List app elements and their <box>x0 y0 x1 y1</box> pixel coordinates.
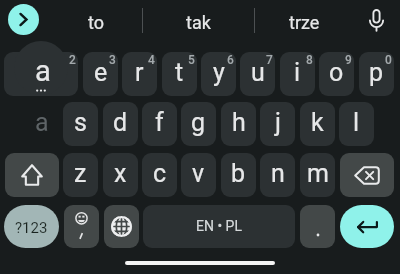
button[interactable]: u <box>240 52 275 96</box>
button[interactable]: r <box>122 52 157 96</box>
button[interactable]: n <box>260 153 295 197</box>
staticText: 8 <box>306 53 313 67</box>
staticText: l <box>353 108 360 137</box>
button[interactable]: Period <box>300 205 335 248</box>
button[interactable]: EN • PL <box>143 205 295 248</box>
button[interactable]: p <box>359 52 394 96</box>
staticText: p <box>369 58 384 87</box>
button[interactable]: a <box>24 102 59 146</box>
staticText: s <box>74 108 87 137</box>
staticText: e <box>94 58 108 87</box>
staticText: 0 <box>385 53 392 67</box>
button[interactable]: Voice input <box>360 4 393 37</box>
staticText: u <box>251 58 265 87</box>
button[interactable]: v <box>181 153 216 197</box>
staticText: y <box>213 58 225 87</box>
staticText: k <box>311 108 324 137</box>
staticText: j <box>275 108 281 137</box>
button[interactable]: i <box>280 52 315 96</box>
button[interactable]: l <box>339 102 374 146</box>
staticText: m <box>307 159 329 188</box>
staticText: r <box>135 58 144 87</box>
button[interactable]: Enter <box>340 205 394 248</box>
button[interactable]: c <box>142 153 177 197</box>
button[interactable]: trze <box>254 0 355 40</box>
staticText: h <box>232 108 246 137</box>
button[interactable]: a <box>4 52 78 96</box>
button[interactable]: x <box>103 153 138 197</box>
button[interactable]: g <box>181 102 216 146</box>
button[interactable]: Backspace <box>340 153 394 197</box>
button[interactable]: tak <box>143 0 254 40</box>
staticText: t <box>175 58 184 87</box>
staticText: 3 <box>109 53 116 67</box>
button[interactable]: h <box>221 102 256 146</box>
button[interactable]: f <box>142 102 177 146</box>
button[interactable]: k <box>300 102 335 146</box>
staticText: g <box>191 108 206 137</box>
staticText: b <box>231 159 246 188</box>
staticText: a <box>35 54 51 88</box>
staticText: 6 <box>227 53 234 67</box>
staticText: 4 <box>148 53 155 67</box>
button[interactable]: Change language <box>104 205 139 248</box>
button[interactable]: d <box>103 102 138 146</box>
button[interactable]: z <box>63 153 98 197</box>
staticText: 7 <box>266 53 273 67</box>
staticText: ?123 <box>15 219 48 237</box>
staticText: tak <box>186 12 211 33</box>
button[interactable]: y <box>201 52 236 96</box>
staticText: to <box>88 12 104 33</box>
staticText: 9 <box>345 53 352 67</box>
button[interactable]: Emoji <box>64 205 99 248</box>
staticText: d <box>113 108 128 137</box>
staticText: n <box>271 159 285 188</box>
button[interactable]: b <box>221 153 256 197</box>
staticText: EN • PL <box>196 218 242 234</box>
button[interactable]: s <box>63 102 98 146</box>
button[interactable]: e <box>83 52 118 96</box>
staticText: z <box>74 159 87 188</box>
staticText: 2 <box>69 53 76 67</box>
staticText: o <box>329 58 344 87</box>
staticText: c <box>153 159 167 188</box>
staticText: v <box>192 159 205 188</box>
button[interactable]: Shift <box>5 153 59 197</box>
button[interactable]: j <box>260 102 295 146</box>
staticText: i <box>294 58 301 87</box>
button[interactable]: to <box>48 0 143 40</box>
staticText: x <box>114 159 127 188</box>
button[interactable]: t <box>162 52 197 96</box>
button[interactable]: ?123 <box>4 205 59 248</box>
button[interactable]: Expand toolbar <box>8 4 39 35</box>
button[interactable]: o <box>319 52 354 96</box>
staticText: f <box>155 108 164 137</box>
staticText: trze <box>289 12 320 33</box>
button[interactable]: m <box>300 153 335 197</box>
staticText: 5 <box>188 53 195 67</box>
staticText: a <box>35 108 49 137</box>
